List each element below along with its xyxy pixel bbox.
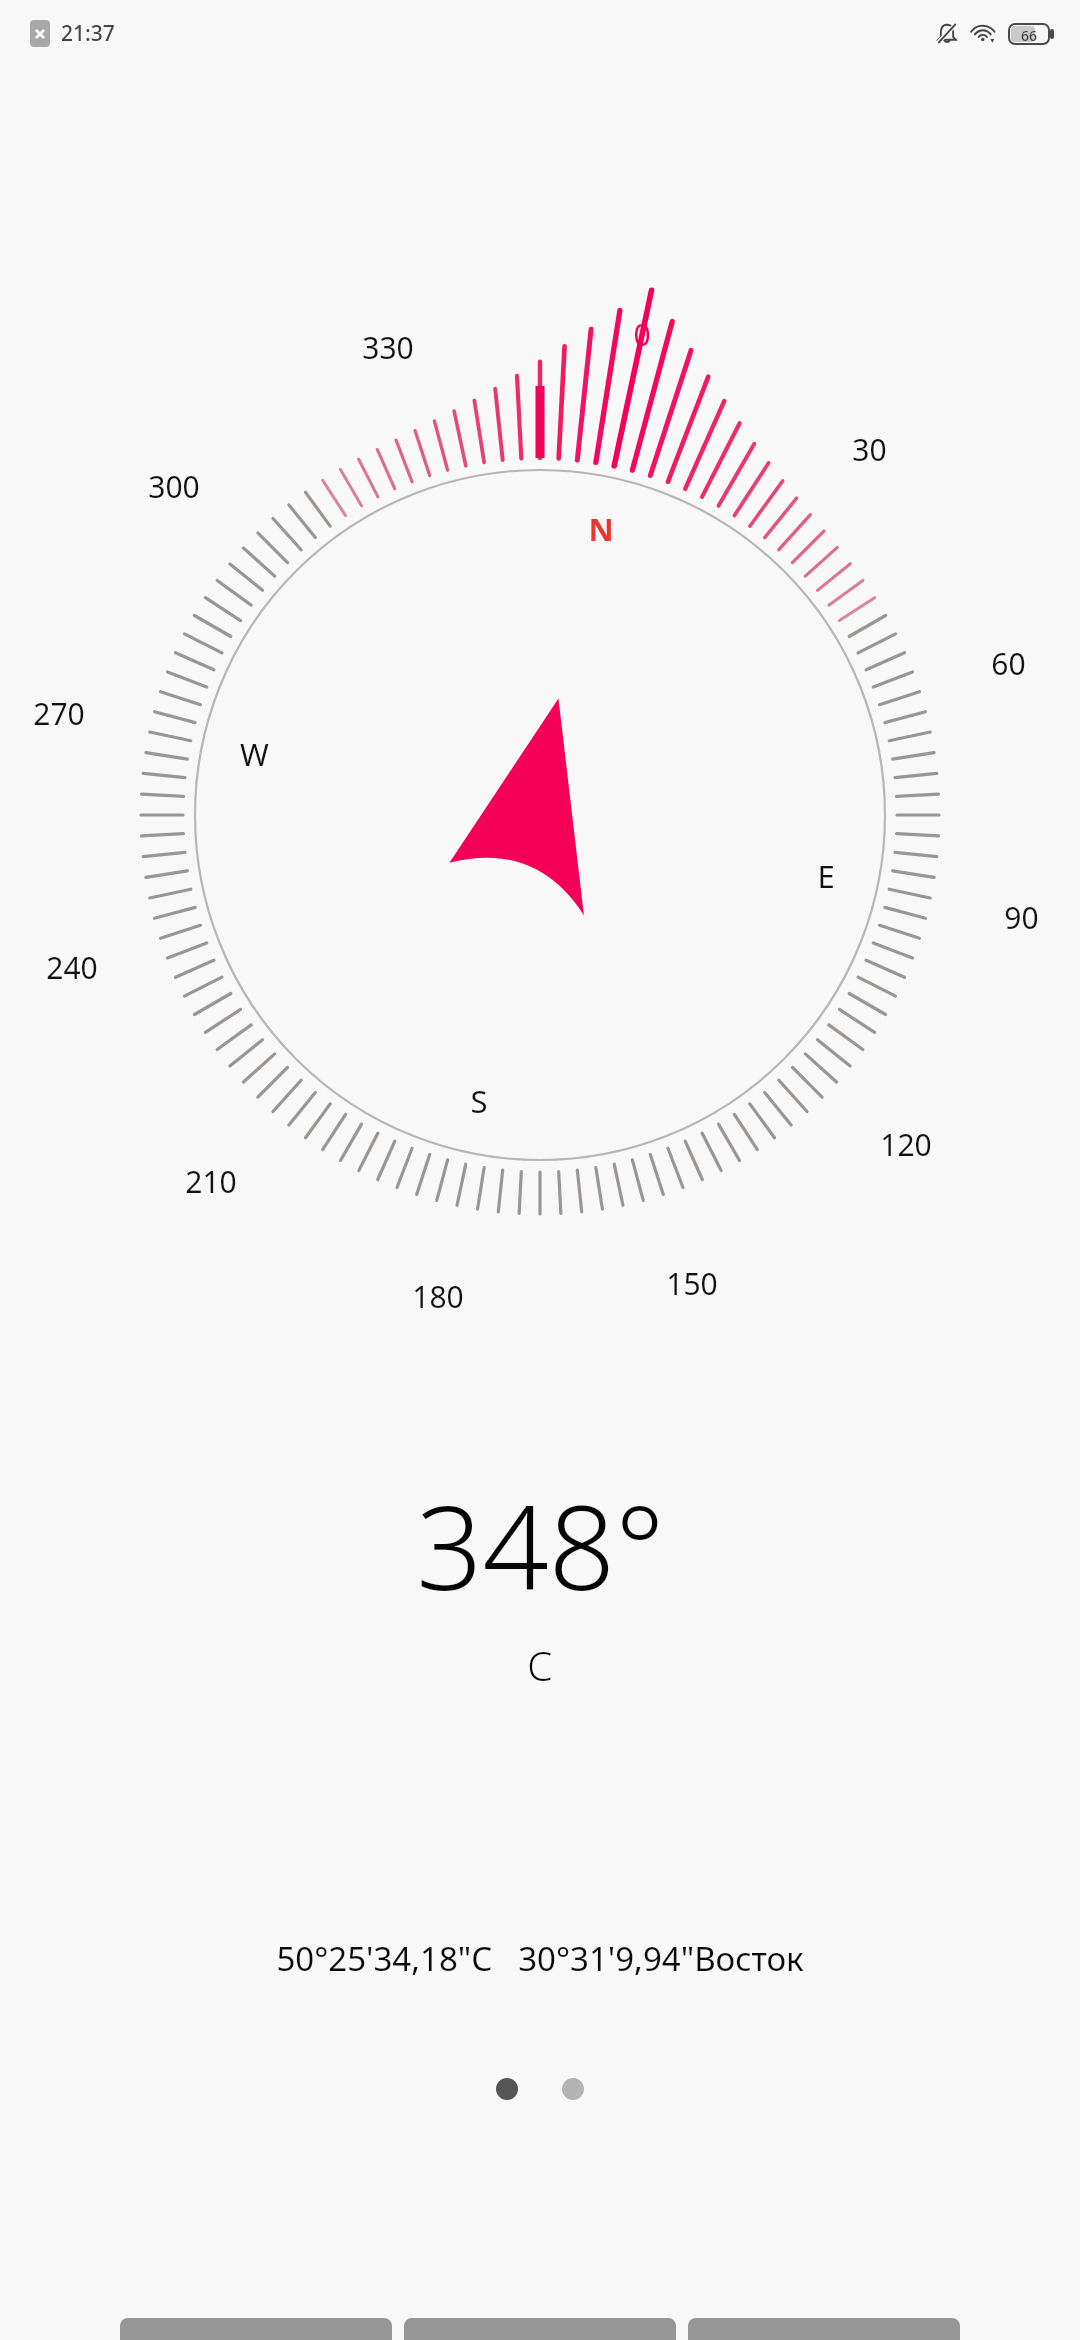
staticText: S [470,1080,488,1122]
staticText: 66 [1021,26,1038,42]
staticText: E [817,855,835,897]
staticText: 180 [412,1276,464,1317]
staticText: 210 [185,1161,237,1202]
staticText: 270 [33,693,85,734]
button[interactable]: Page 2 [562,2078,584,2100]
staticText: 60 [991,643,1026,684]
staticText: 30 [852,429,887,470]
staticText: 240 [46,947,98,988]
staticText: 348° [416,1466,665,1624]
staticText: 120 [880,1124,932,1165]
button[interactable]: Page 1 [496,2078,518,2100]
staticText: 330 [362,327,414,368]
staticText: 300 [148,466,200,507]
staticText: 150 [666,1263,718,1304]
staticText: С [527,1638,553,1692]
staticText: N [588,508,614,550]
staticText: 0 [633,314,651,355]
button[interactable]: Recents [688,2318,960,2340]
button[interactable]: Home [404,2318,676,2340]
staticText: 21:37 [61,19,115,48]
staticText: 50°25'34,18"С 30°31'9,94"Восток [276,1936,804,1981]
button[interactable]: Compass dial, heading 348 degrees [0,225,1080,1405]
staticText: 90 [1004,897,1039,938]
staticText: W [240,733,269,775]
button[interactable]: Back [120,2318,392,2340]
